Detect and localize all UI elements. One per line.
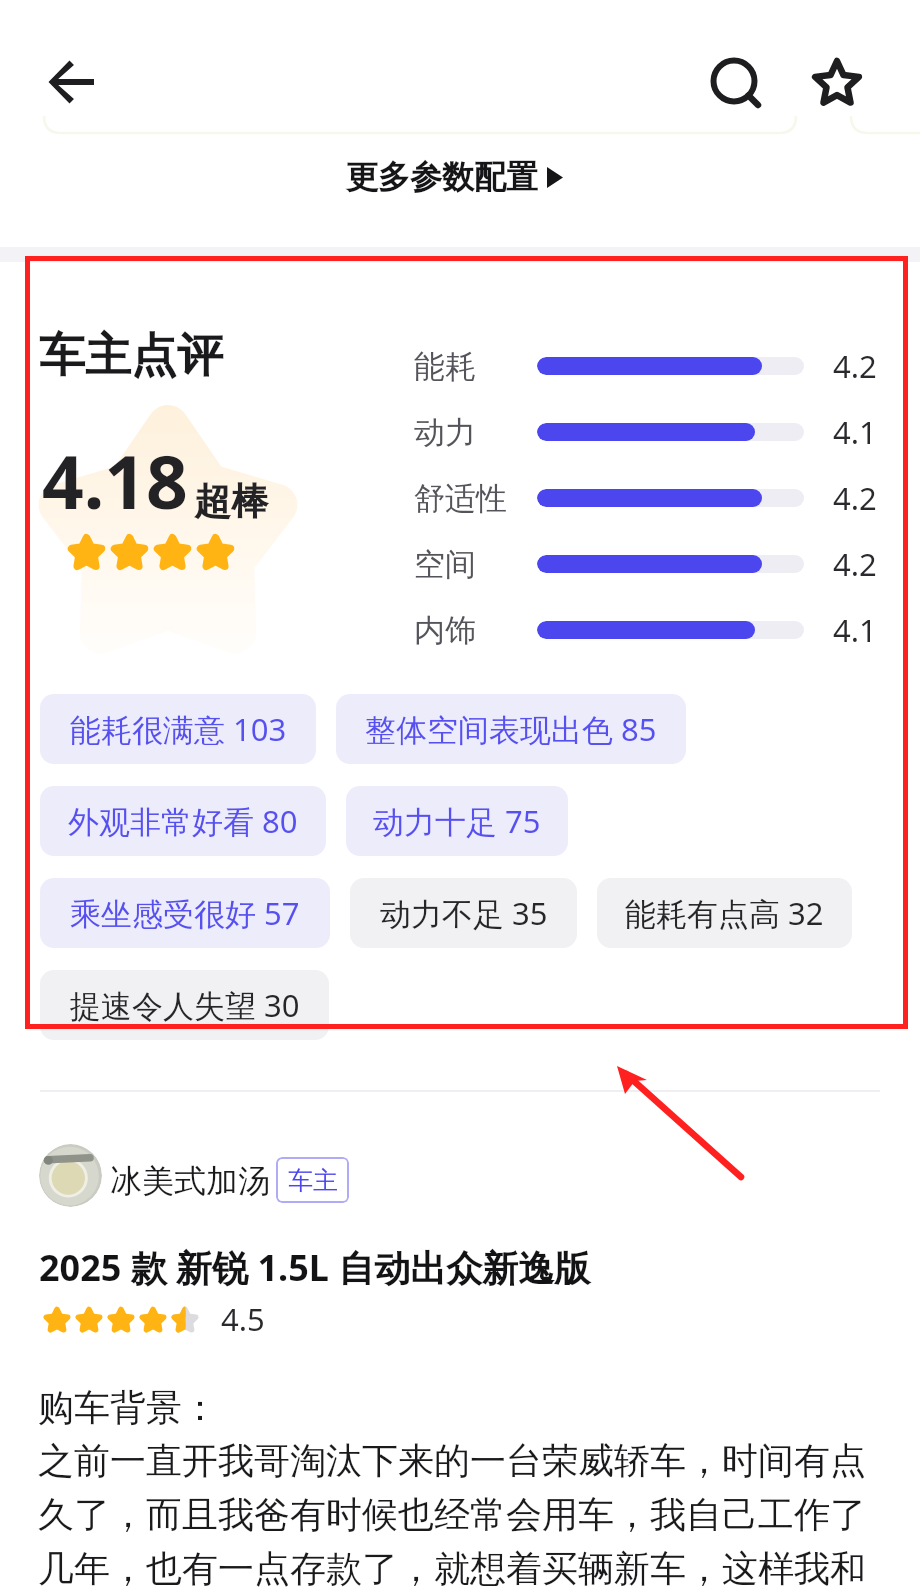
staticText: 舒适性 [414, 479, 507, 518]
staticText: 4.2 [833, 543, 877, 585]
staticText: 冰美式加汤 [110, 1161, 270, 1201]
staticText: 动力不足 35 [380, 892, 548, 934]
staticText: 内饰 [414, 611, 476, 650]
staticText: 动力 [414, 413, 476, 452]
staticText: 4.5 [221, 1298, 265, 1340]
staticText: 车主 [288, 1165, 338, 1196]
button[interactable]: 整体空间表现出色 85 [336, 694, 686, 764]
staticText: 空间 [414, 545, 476, 584]
button[interactable]: 动力不足 35 [350, 878, 577, 948]
staticText: 车主点评 [39, 327, 223, 385]
staticText: 4.2 [833, 477, 877, 519]
button[interactable]: 车主 [276, 1157, 349, 1203]
button[interactable]: Search [690, 38, 778, 126]
staticText: 超棒 [194, 478, 268, 525]
staticText: 动力十足 75 [373, 800, 541, 842]
staticText: 提速令人失望 30 [70, 984, 300, 1026]
staticText: 4.1 [833, 411, 877, 453]
staticText: 购车背景： 之前一直开我哥淘汰下来的一台荣威轿车，时间有点久了，而且我爸有时候也… [38, 1385, 884, 1588]
button[interactable]: 提速令人失望 30 [40, 970, 329, 1040]
button[interactable]: 外观非常好看 80 [40, 786, 326, 856]
staticText: 整体空间表现出色 85 [365, 708, 657, 750]
button[interactable]: Back [14, 42, 108, 122]
button[interactable]: 乘坐感受很好 57 [40, 878, 330, 948]
staticText: 4.2 [833, 345, 877, 387]
button[interactable]: Favorite [793, 38, 881, 126]
staticText: 能耗有点高 32 [625, 892, 824, 934]
staticText: 外观非常好看 80 [68, 800, 298, 842]
staticText: 更多参数配置 [346, 157, 538, 197]
staticText: 4.1 [833, 609, 877, 651]
staticText: 能耗很满意 103 [70, 708, 287, 750]
button[interactable]: 动力十足 75 [346, 786, 568, 856]
button[interactable]: 更多参数配置 [0, 132, 920, 247]
staticText: 乘坐感受很好 57 [70, 892, 300, 934]
staticText: 能耗 [414, 347, 476, 386]
staticText: 2025 款 新锐 1.5L 自动出众新逸版 [39, 1243, 591, 1292]
button[interactable]: 能耗很满意 103 [40, 694, 316, 764]
button[interactable]: 能耗有点高 32 [597, 878, 852, 948]
staticText: 4.18 [42, 431, 188, 530]
